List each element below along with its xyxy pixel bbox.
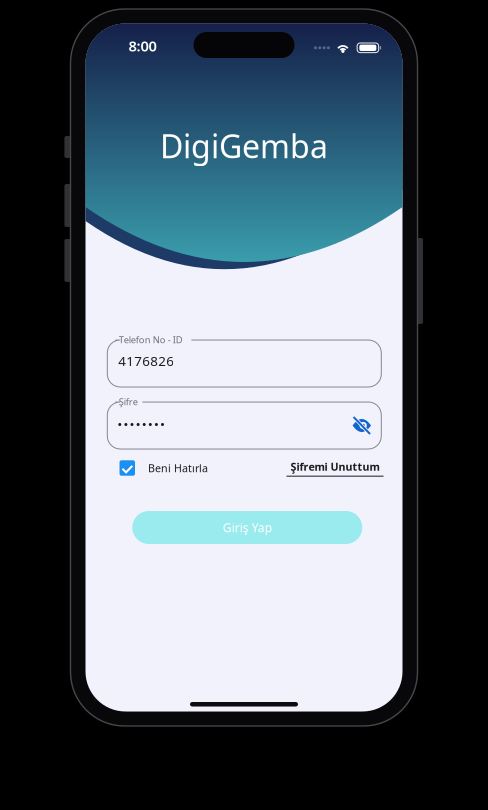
staticText: Şifremi Unuttum [290, 459, 379, 474]
button[interactable]: Şifreyi göster [350, 414, 374, 436]
staticText: 8:00 [128, 36, 156, 55]
button[interactable]: Şifremi Unuttum [286, 459, 383, 477]
button[interactable]: Giriş Yap [132, 511, 362, 544]
button[interactable]: Beni Hatırla [119, 460, 208, 476]
staticText: Beni Hatırla [148, 461, 208, 475]
staticText: Giriş Yap [223, 519, 272, 535]
staticText: DigiGemba [160, 124, 328, 167]
staticText: Telefon No - ID [119, 333, 183, 346]
staticText: Şifre [119, 395, 138, 408]
staticText: 4176826 [118, 352, 174, 370]
